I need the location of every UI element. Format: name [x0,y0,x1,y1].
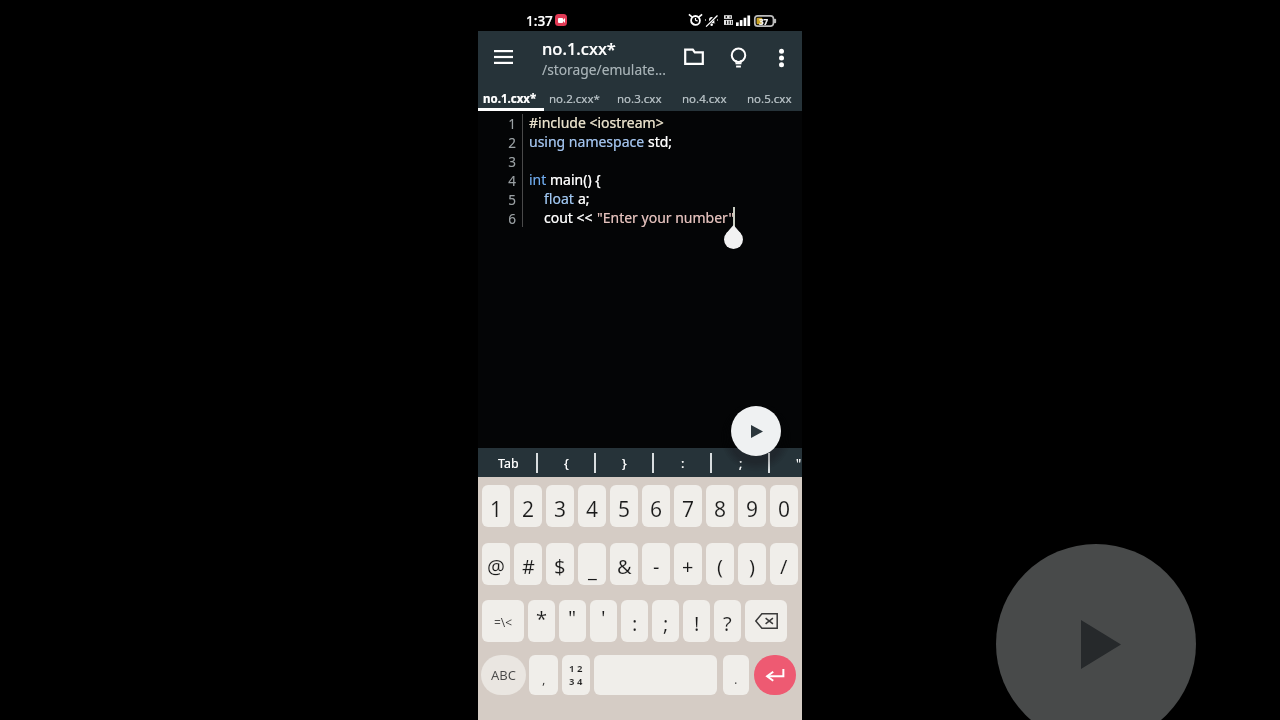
staticText: ( [717,553,723,580]
button[interactable]: Tab [494,448,523,477]
staticText: main() { [550,170,601,189]
button[interactable]: ; [726,448,755,477]
staticText: a; [578,189,590,208]
button[interactable]: ! [683,600,710,642]
staticText: 4 [478,172,516,190]
button[interactable]: More options [760,34,802,78]
staticText: no.4.cxx [682,91,727,107]
button[interactable]: } [610,448,639,477]
staticText: : [681,455,685,472]
button[interactable]: =\< [482,600,524,642]
button[interactable]: ? [714,600,741,642]
staticText: float [544,189,578,208]
button[interactable]: ' [590,600,617,642]
button[interactable]: 4 [578,485,606,527]
staticText: 6 [650,495,663,524]
button[interactable]: # [514,543,542,585]
button[interactable]: * [528,600,555,642]
button[interactable]: / [770,543,798,585]
staticText: " [568,604,577,631]
button[interactable]: Menu [487,41,519,73]
button[interactable]: 3 [546,485,574,527]
staticText: 6 [478,210,516,228]
staticText: ' [601,604,606,631]
button[interactable]: ) [738,543,766,585]
button[interactable]: - [642,543,670,585]
button[interactable]: 2 [514,485,542,527]
button[interactable]: no.3.cxx [607,87,672,111]
button[interactable]: ( [706,543,734,585]
button[interactable]: Run [731,406,781,456]
staticText: : [632,610,638,637]
button[interactable]: 0 [770,485,798,527]
staticText: " [796,455,802,472]
staticText: * [536,605,548,632]
button[interactable]: 1 2 [562,655,590,695]
staticText: ! [694,610,700,637]
staticText: no.1.cxx* [483,91,537,107]
button[interactable]: 8 [706,485,734,527]
staticText: ; [739,455,743,472]
staticText: } [622,455,627,472]
staticText: # [522,553,535,580]
staticText: 1:37 [526,12,553,30]
staticText: 2 [478,134,516,152]
staticText: + [682,553,694,580]
staticText: 3 [554,495,567,524]
staticText: Tab [498,455,519,472]
staticText: 1 [490,495,503,524]
staticText: =\< [494,614,513,630]
button[interactable]: 7 [674,485,702,527]
staticText: 8 [714,495,727,524]
staticText: /storage/emulate... [542,60,666,79]
staticText: no.5.cxx [747,91,792,107]
staticText: no.1.cxx* [542,37,616,59]
staticText: - [653,553,660,580]
button[interactable]: , [529,655,558,695]
staticText: using namespace [529,132,648,151]
button[interactable]: : [668,448,697,477]
button[interactable]: + [674,543,702,585]
button[interactable]: @ [482,543,510,585]
button[interactable]: 5 [610,485,638,527]
button[interactable]: { [552,448,581,477]
button[interactable]: Open folder [672,34,716,78]
button[interactable]: no.1.cxx* [478,87,542,111]
button[interactable]: $ [546,543,574,585]
staticText: 7 [682,495,695,524]
staticText: ? [723,610,732,637]
staticText: cout << [544,208,597,227]
staticText: 5 [478,191,516,209]
staticText: / [780,553,788,580]
staticText: 2 [522,495,535,524]
button[interactable]: " [784,448,802,477]
button[interactable]: _ [578,543,606,585]
staticText: 9 [746,495,759,524]
button[interactable]: : [621,600,648,642]
button[interactable]: " [559,600,586,642]
button[interactable]: & [610,543,638,585]
button[interactable]: Hint [716,34,760,78]
staticText: 5 [618,495,631,524]
staticText: , [542,670,546,688]
button[interactable]: no.4.cxx [672,87,737,111]
button[interactable]: 9 [738,485,766,527]
button[interactable]: ABC [481,655,526,695]
staticText: #include <iostream> [529,113,664,132]
button[interactable]: Play [996,544,1196,720]
button[interactable]: ; [652,600,679,642]
button[interactable]: Backspace [745,600,787,642]
button[interactable]: no.2.cxx* [542,87,607,111]
staticText: 4 [586,495,599,524]
staticText: $ [554,553,566,580]
staticText: ABC [491,666,516,684]
button[interactable]: . [723,655,749,695]
button[interactable]: no.5.cxx [737,87,802,111]
staticText: 0 [778,495,791,524]
staticText: @ [487,553,505,580]
button[interactable]: Enter [754,655,796,695]
staticText: { [564,455,569,472]
button[interactable]: 1 [482,485,510,527]
button[interactable]: 6 [642,485,670,527]
